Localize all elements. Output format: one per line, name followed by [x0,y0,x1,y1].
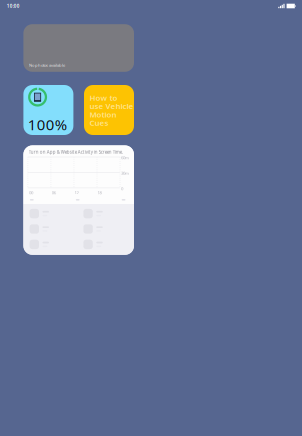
button[interactable]: Screen Time [23,145,134,255]
staticText: 60m [121,155,129,161]
staticText: 00 [29,190,33,196]
staticText: No photos available [29,62,65,68]
staticText: 18 [97,190,101,196]
staticText: 12 [75,190,79,196]
staticText: Cues [89,117,108,128]
staticText: Motion [89,109,116,120]
staticText: 10:00 [7,3,20,9]
button[interactable]: Photos [23,24,134,72]
staticText: 30m [121,170,129,176]
staticText: 100% [28,114,67,135]
button[interactable]: Battery 100 percent [23,85,73,135]
staticText: use Vehicle [89,101,133,111]
staticText: Turn on App & Website Activity in Screen… [29,149,123,155]
button[interactable]: How to use Vehicle Motion Cues [84,85,134,135]
staticText: 06 [52,190,56,196]
staticText: 0 [121,186,123,191]
staticText: How to [89,92,117,103]
